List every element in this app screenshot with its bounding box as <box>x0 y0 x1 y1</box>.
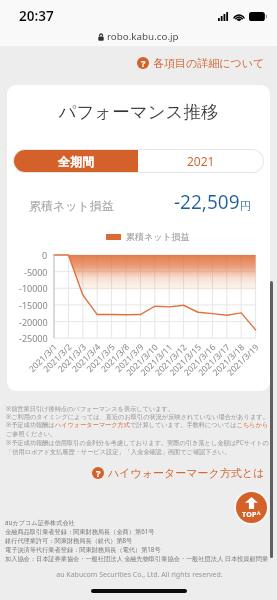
staticText: 銀行代理業許可：関東財務局長（銀代）第8号 <box>5 536 133 544</box>
staticText: 加入協会：日本証券業協会・一般社団法人 金融先物取引業協会・一般社団法人 日本投… <box>5 554 274 562</box>
staticText: パフォーマンス推移 <box>7 101 270 123</box>
staticText: -22,509 <box>174 189 240 215</box>
staticText: ※予定成功報酬はハイウォーターマーク方式で計算しています。手数料についてはこちら… <box>6 420 271 438</box>
staticText: au Kabucom Securities Co., Ltd. All righ… <box>5 570 274 580</box>
staticText: ※ご利用のタイミングによっては、直近のお取引の状況が反映されていない場合がありま… <box>6 412 269 420</box>
button[interactable]: 2021 <box>138 150 263 172</box>
staticText: ? <box>96 467 101 479</box>
staticText: 累積ネット損益 <box>126 231 190 242</box>
staticText: 2021 <box>187 153 215 169</box>
staticText: 各項目の詳細について <box>153 56 265 70</box>
staticText: ※前営業日引け後時点のパフォーマンスを表示しています。 <box>6 404 175 412</box>
staticText: TOP^ <box>242 510 261 520</box>
button[interactable]: 全期間 <box>14 150 138 172</box>
staticText: 全期間 <box>58 154 94 169</box>
staticText: 20:37 <box>19 7 54 25</box>
staticText: 累積ネット損益 <box>29 198 114 213</box>
button[interactable]: Back to top <box>236 492 267 523</box>
staticText: 円 <box>240 199 251 213</box>
staticText: ハイウォーターマーク方式とは <box>108 466 265 480</box>
staticText: ※予定成功報酬は信用取引の金利分を考慮しております。実際の引き落とし金額はPCサ… <box>6 438 271 456</box>
staticText: auカブコム証券株式会社 <box>5 518 75 526</box>
staticText: ? <box>141 57 146 69</box>
staticText: 電子決済等代行業者登録：関東財務局長（電代）第18号 <box>5 545 161 553</box>
button[interactable]: ? <box>127 54 277 72</box>
button[interactable]: ? <box>82 464 277 482</box>
staticText: 金融商品取引業者登録：関東財務局長（金商）第61号 <box>5 527 155 535</box>
staticText: robo.kabu.co.jp <box>107 30 179 43</box>
